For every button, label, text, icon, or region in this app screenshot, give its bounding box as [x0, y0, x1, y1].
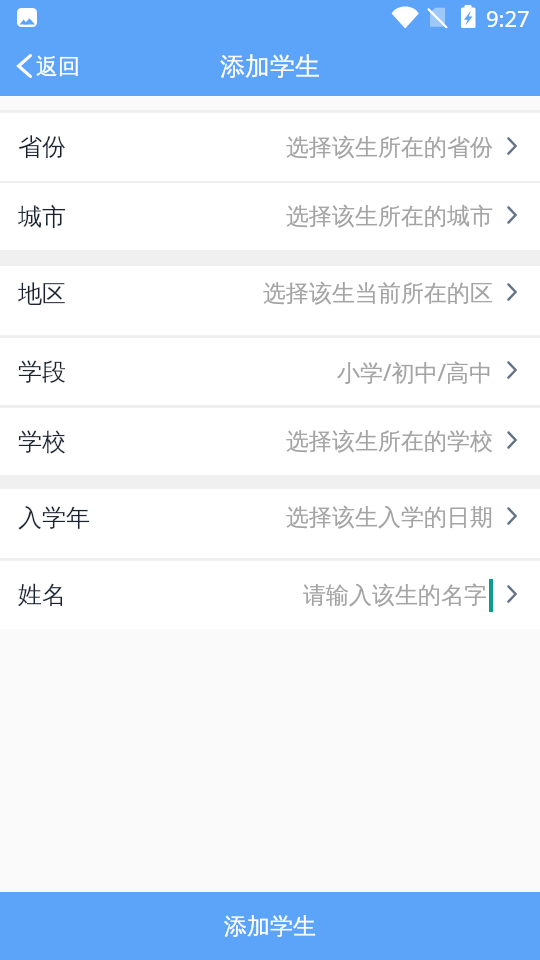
staticText: 选择该生所在的城市 — [286, 202, 493, 231]
staticText: 请输入该生的名字 — [303, 581, 487, 610]
staticText: 城市 — [18, 202, 66, 232]
button[interactable]: 添加学生 — [0, 892, 540, 960]
staticText: 返回 — [36, 53, 80, 81]
button[interactable]: 姓名 — [0, 561, 540, 629]
staticText: 入学年 — [18, 503, 90, 533]
staticText: 选择该生当前所在的区 — [263, 279, 493, 308]
staticText: 选择该生入学的日期 — [286, 503, 493, 532]
staticText: 选择该生所在的省份 — [286, 133, 493, 162]
staticText: 姓名 — [18, 580, 66, 610]
other: 打开 — [507, 361, 517, 379]
button[interactable]: 省份 — [0, 113, 540, 181]
button[interactable]: 地区 — [0, 266, 540, 335]
other: 打开 — [507, 283, 517, 301]
button[interactable]: 学校 — [0, 408, 540, 475]
staticText: 学段 — [18, 357, 66, 387]
staticText: 添加学生 — [220, 51, 320, 82]
staticText: 地区 — [18, 279, 66, 309]
other: 打开 — [507, 585, 517, 603]
button[interactable]: 城市 — [0, 183, 540, 250]
other: 打开 — [507, 206, 517, 224]
button[interactable]: 返回 — [0, 43, 94, 93]
other: 打开 — [507, 507, 517, 525]
staticText: 省份 — [18, 132, 66, 162]
button[interactable]: 学段 — [0, 338, 540, 405]
staticText: 学校 — [18, 427, 66, 457]
other: 打开 — [507, 431, 517, 449]
staticText: 9:27 — [486, 3, 530, 33]
staticText: 添加学生 — [224, 912, 316, 941]
other: 打开 — [507, 137, 517, 155]
button[interactable]: 入学年 — [0, 489, 540, 558]
staticText: 小学/初中/高中 — [337, 356, 493, 387]
staticText: 选择该生所在的学校 — [286, 427, 493, 456]
